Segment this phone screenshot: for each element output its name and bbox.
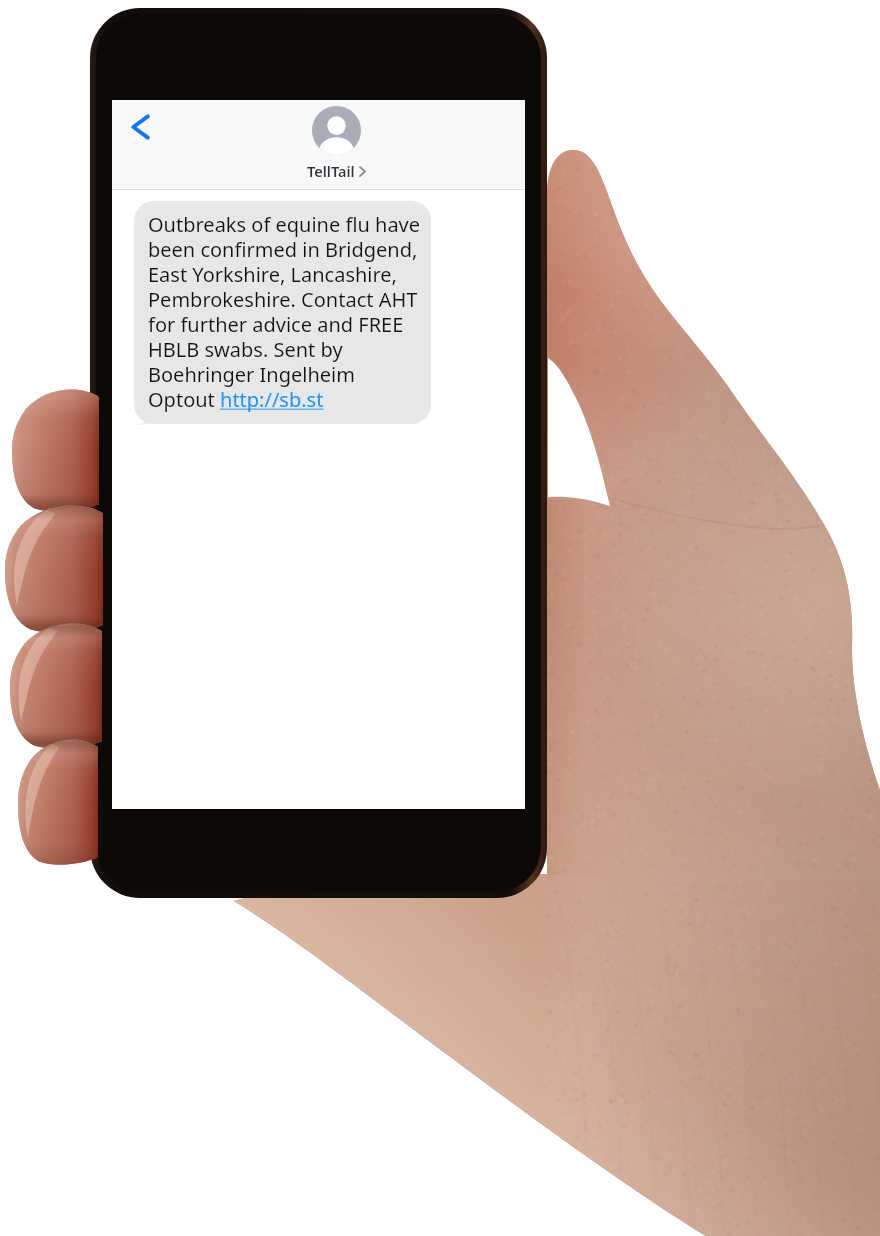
button[interactable]: TellTail contact xyxy=(307,106,366,181)
staticText: TellTail xyxy=(307,161,355,181)
button[interactable]: Back xyxy=(119,106,161,148)
staticText: Outbreaks of equine flu have been confir… xyxy=(148,211,421,413)
button[interactable]: Outbreaks of equine flu have been confir… xyxy=(134,201,431,424)
